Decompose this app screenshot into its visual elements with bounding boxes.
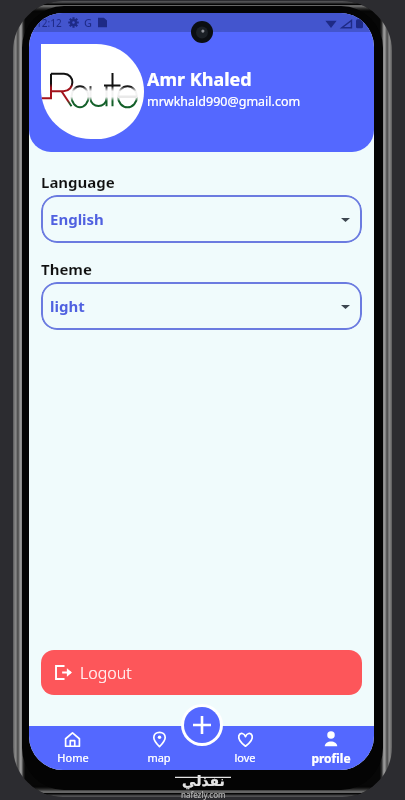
staticText: Language — [41, 172, 115, 192]
staticText: Logout — [80, 662, 132, 684]
button[interactable]: English — [41, 195, 362, 243]
button[interactable]: profile — [288, 726, 374, 770]
button[interactable]: Home — [29, 726, 116, 770]
staticText: love — [234, 750, 256, 765]
staticText: Home — [57, 750, 89, 765]
staticText: 12:12 — [36, 16, 62, 30]
staticText: Amr Khaled — [147, 67, 252, 92]
button[interactable]: love — [202, 726, 288, 770]
staticText: Theme — [41, 259, 92, 279]
button[interactable]: Logout — [41, 650, 362, 695]
staticText: map — [147, 750, 171, 765]
staticText: G — [84, 15, 92, 30]
button[interactable]: Add — [184, 707, 220, 743]
staticText: نفذلي — [182, 773, 225, 789]
staticText: light — [50, 296, 85, 316]
staticText: mrwkhald990@gmail.com — [147, 93, 301, 110]
staticText: profile — [311, 750, 351, 766]
button[interactable]: light — [41, 282, 362, 330]
button[interactable]: map — [116, 726, 202, 770]
staticText: English — [50, 209, 104, 229]
staticText: nafezly.com — [181, 789, 226, 800]
